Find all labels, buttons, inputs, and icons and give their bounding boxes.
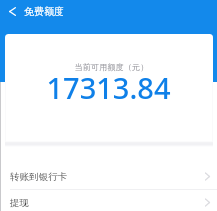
staticText: 当前可用额度（元） (3, 62, 217, 72)
button[interactable]: Back (0, 0, 24, 22)
staticText: 免费额度 (24, 5, 64, 18)
button[interactable]: 转账到银行卡 (0, 164, 217, 189)
staticText: 转账到银行卡 (10, 171, 67, 183)
staticText: 提现 (10, 197, 29, 209)
staticText: 17313.84 (0, 68, 217, 107)
button[interactable]: 提现 (0, 190, 217, 211)
